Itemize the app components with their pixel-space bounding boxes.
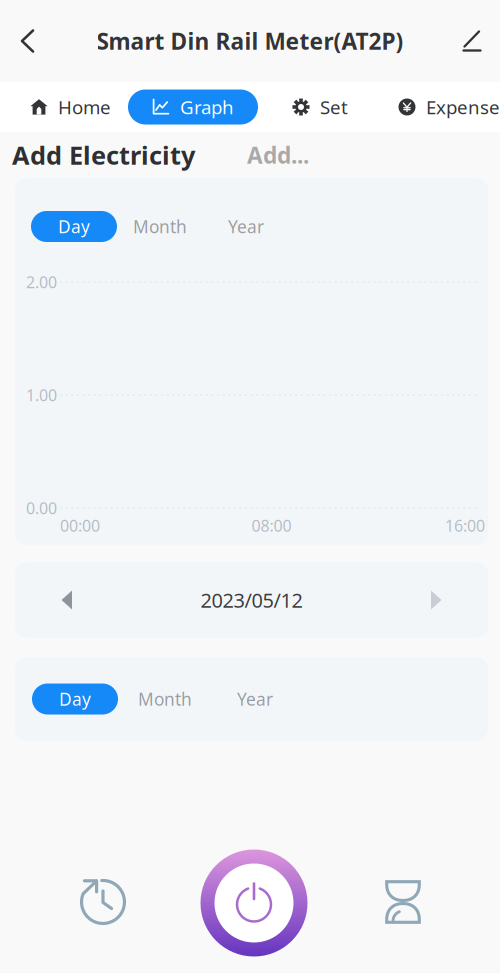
staticText: Day (58, 215, 90, 238)
staticText: Month (133, 215, 187, 238)
button[interactable]: Month (117, 211, 203, 242)
staticText: Month (138, 687, 192, 710)
staticText: 2023/05/12 (200, 587, 302, 613)
button[interactable]: Year (203, 211, 289, 242)
staticText: 1.00 (26, 384, 57, 406)
staticText: Day (59, 687, 91, 710)
button[interactable]: Home (13, 89, 128, 124)
button[interactable]: Next day (412, 576, 460, 624)
button[interactable]: History (55, 854, 151, 950)
staticText: Add Electricity (12, 138, 195, 172)
button[interactable]: Edit (444, 0, 500, 82)
button[interactable]: Timer (355, 854, 451, 950)
staticText: Home (58, 95, 111, 119)
staticText: Year (228, 215, 264, 238)
staticText: 00:00 (60, 515, 100, 536)
button[interactable]: Back (0, 0, 56, 82)
staticText: 16:00 (445, 515, 485, 536)
button[interactable]: Day (31, 211, 117, 242)
staticText: Graph (180, 95, 234, 119)
button[interactable]: Previous day (43, 576, 91, 624)
button[interactable]: Day (32, 683, 118, 714)
staticText: 2.00 (26, 271, 57, 293)
staticText: 0.00 (26, 497, 57, 519)
button[interactable]: Set (258, 89, 382, 124)
staticText: Year (237, 687, 273, 710)
staticText: Smart Din Rail Meter(AT2P) (96, 26, 403, 56)
button[interactable]: Year (212, 683, 298, 714)
button[interactable]: Expense (382, 89, 500, 124)
button[interactable]: Graph (128, 89, 258, 124)
button[interactable]: Month (122, 683, 208, 714)
button[interactable]: Power (199, 848, 309, 958)
staticText: 08:00 (251, 515, 291, 536)
staticText: Expense (426, 95, 500, 119)
staticText: Add... (247, 140, 309, 170)
staticText: Set (320, 95, 348, 119)
